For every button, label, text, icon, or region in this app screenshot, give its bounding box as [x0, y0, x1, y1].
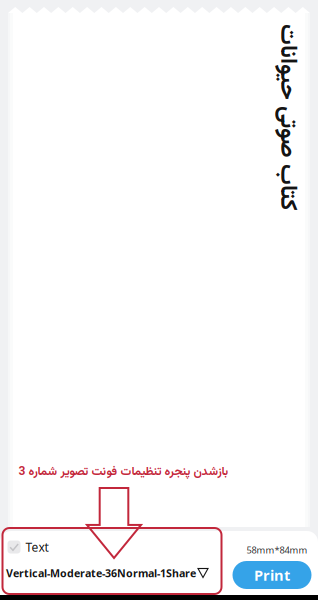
staticText: 58mm*84mm	[246, 544, 307, 556]
staticText: کتاب صوتی حیوانات	[193, 99, 318, 135]
staticText: Text	[25, 539, 48, 555]
staticText: Vertical-Moderate-36Normal-1Share	[6, 566, 196, 580]
staticText: Print	[254, 565, 290, 585]
staticText: بازشدن پنجره تنظیمات فونت تصویر شماره 3	[18, 463, 228, 481]
button[interactable]: Print	[232, 561, 311, 589]
button[interactable]: Text	[6, 539, 49, 555]
button[interactable]: Vertical-Moderate-36Normal-1Share	[6, 566, 208, 580]
